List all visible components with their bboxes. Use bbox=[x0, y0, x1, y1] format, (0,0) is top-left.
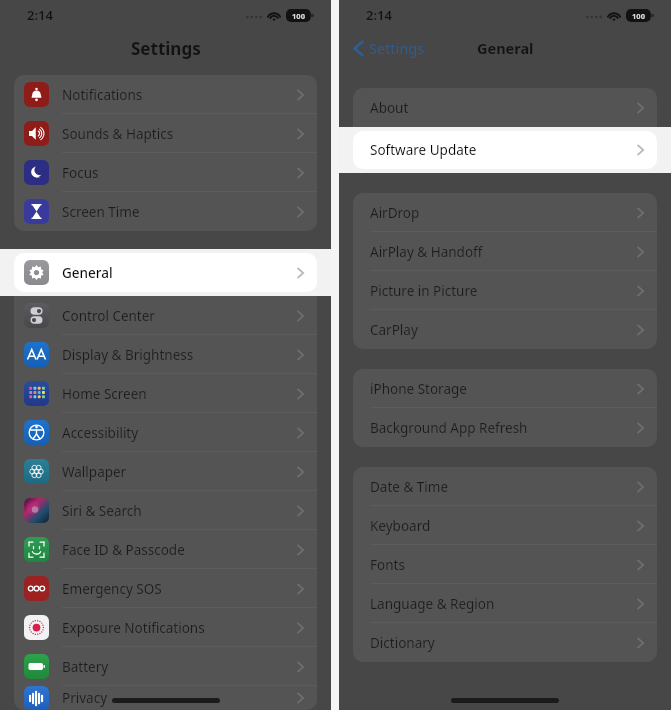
button[interactable]: Wallpaper bbox=[14, 452, 317, 491]
staticText: Exposure Notifications bbox=[62, 619, 205, 637]
staticText: Sounds & Haptics bbox=[62, 125, 174, 143]
button[interactable]: Background App Refresh bbox=[353, 408, 657, 447]
button[interactable]: AirDrop bbox=[353, 193, 657, 232]
button[interactable]: Settings bbox=[350, 34, 428, 62]
button[interactable]: Picture in Picture bbox=[353, 271, 657, 310]
staticText: AirDrop bbox=[370, 204, 420, 222]
staticText: Privacy bbox=[62, 689, 108, 707]
button[interactable]: Focus bbox=[14, 153, 317, 192]
button[interactable]: General bbox=[14, 253, 317, 292]
staticText: Fonts bbox=[370, 556, 405, 574]
staticText: iPhone Storage bbox=[370, 380, 467, 398]
button[interactable]: Emergency SOS bbox=[14, 569, 317, 608]
button[interactable]: About bbox=[353, 88, 657, 127]
staticText: Background App Refresh bbox=[370, 419, 528, 437]
staticText: Siri & Search bbox=[62, 502, 142, 520]
staticText: Software Update bbox=[370, 141, 477, 159]
staticText: Dictionary bbox=[370, 634, 435, 652]
button[interactable]: Control Center bbox=[14, 296, 317, 335]
staticText: Screen Time bbox=[62, 203, 140, 221]
staticText: General bbox=[62, 264, 113, 282]
staticText: Face ID & Passcode bbox=[62, 541, 185, 559]
staticText: 2:14 bbox=[27, 6, 53, 24]
button[interactable]: Accessibility bbox=[14, 413, 317, 452]
button[interactable]: Home Screen bbox=[14, 374, 317, 413]
button[interactable]: Notifications bbox=[14, 75, 317, 114]
staticText: 100 bbox=[632, 11, 645, 21]
button[interactable]: Privacy bbox=[14, 686, 317, 710]
button[interactable]: Software Update bbox=[353, 131, 657, 169]
staticText: CarPlay bbox=[370, 321, 418, 339]
staticText: 100 bbox=[292, 11, 305, 21]
staticText: Language & Region bbox=[370, 595, 495, 613]
staticText: Picture in Picture bbox=[370, 282, 478, 300]
staticText: Notifications bbox=[62, 86, 143, 104]
button[interactable]: Sounds & Haptics bbox=[14, 114, 317, 153]
staticText: Focus bbox=[62, 164, 99, 182]
button[interactable]: Date & Time bbox=[353, 467, 657, 506]
staticText: AirPlay & Handoff bbox=[370, 243, 483, 261]
button[interactable]: AirPlay & Handoff bbox=[353, 232, 657, 271]
staticText: Control Center bbox=[62, 307, 155, 325]
staticText: Keyboard bbox=[370, 517, 431, 535]
staticText: General bbox=[477, 38, 534, 58]
button[interactable]: Battery bbox=[14, 647, 317, 686]
staticText: Battery bbox=[62, 658, 109, 676]
button[interactable]: CarPlay bbox=[353, 310, 657, 349]
staticText: Display & Brightness bbox=[62, 346, 194, 364]
staticText: Home Screen bbox=[62, 385, 147, 403]
button[interactable]: Siri & Search bbox=[14, 491, 317, 530]
button[interactable]: Keyboard bbox=[353, 506, 657, 545]
button[interactable]: Screen Time bbox=[14, 192, 317, 231]
button[interactable]: Face ID & Passcode bbox=[14, 530, 317, 569]
button[interactable]: iPhone Storage bbox=[353, 369, 657, 408]
button[interactable]: Language & Region bbox=[353, 584, 657, 623]
button[interactable]: Fonts bbox=[353, 545, 657, 584]
staticText: Settings bbox=[369, 38, 425, 58]
staticText: About bbox=[370, 99, 409, 117]
staticText: 2:14 bbox=[366, 6, 392, 24]
staticText: Wallpaper bbox=[62, 463, 127, 481]
button[interactable]: Dictionary bbox=[353, 623, 657, 662]
staticText: Accessibility bbox=[62, 424, 139, 442]
staticText: Settings bbox=[131, 37, 201, 60]
button[interactable]: Display & Brightness bbox=[14, 335, 317, 374]
button[interactable]: Exposure Notifications bbox=[14, 608, 317, 647]
staticText: Date & Time bbox=[370, 478, 449, 496]
staticText: Emergency SOS bbox=[62, 580, 162, 598]
